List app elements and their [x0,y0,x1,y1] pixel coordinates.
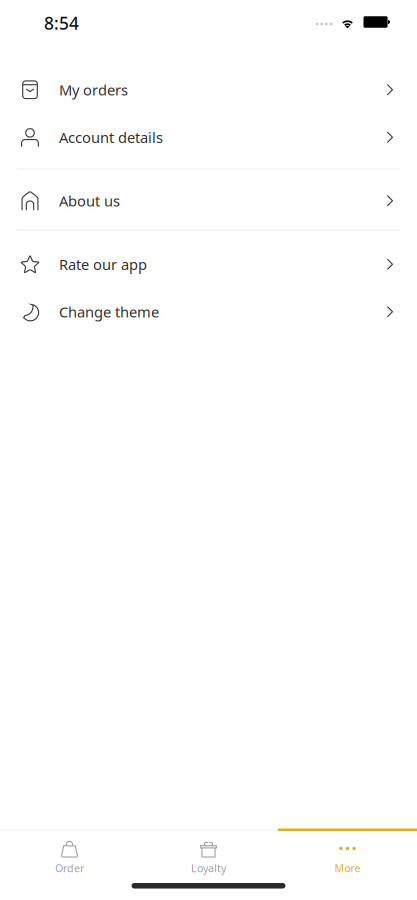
staticText: About us [59,191,120,210]
staticText: Change theme [59,302,159,321]
staticText: Rate our app [59,254,147,274]
staticText: More [334,861,360,875]
button[interactable]: My orders [0,66,417,113]
staticText: Loyalty [191,861,226,875]
staticText: Order [55,861,84,875]
staticText: Account details [59,127,163,147]
button[interactable]: Account details [0,113,417,161]
button[interactable]: Change theme [0,288,417,335]
staticText: 8:54 [44,11,79,34]
button[interactable]: Loyalty [139,831,278,883]
staticText: My orders [59,80,128,99]
button[interactable]: About us [0,177,417,224]
button[interactable]: Order [0,831,139,883]
button[interactable]: More [278,831,417,883]
button[interactable]: Rate our app [0,240,417,288]
